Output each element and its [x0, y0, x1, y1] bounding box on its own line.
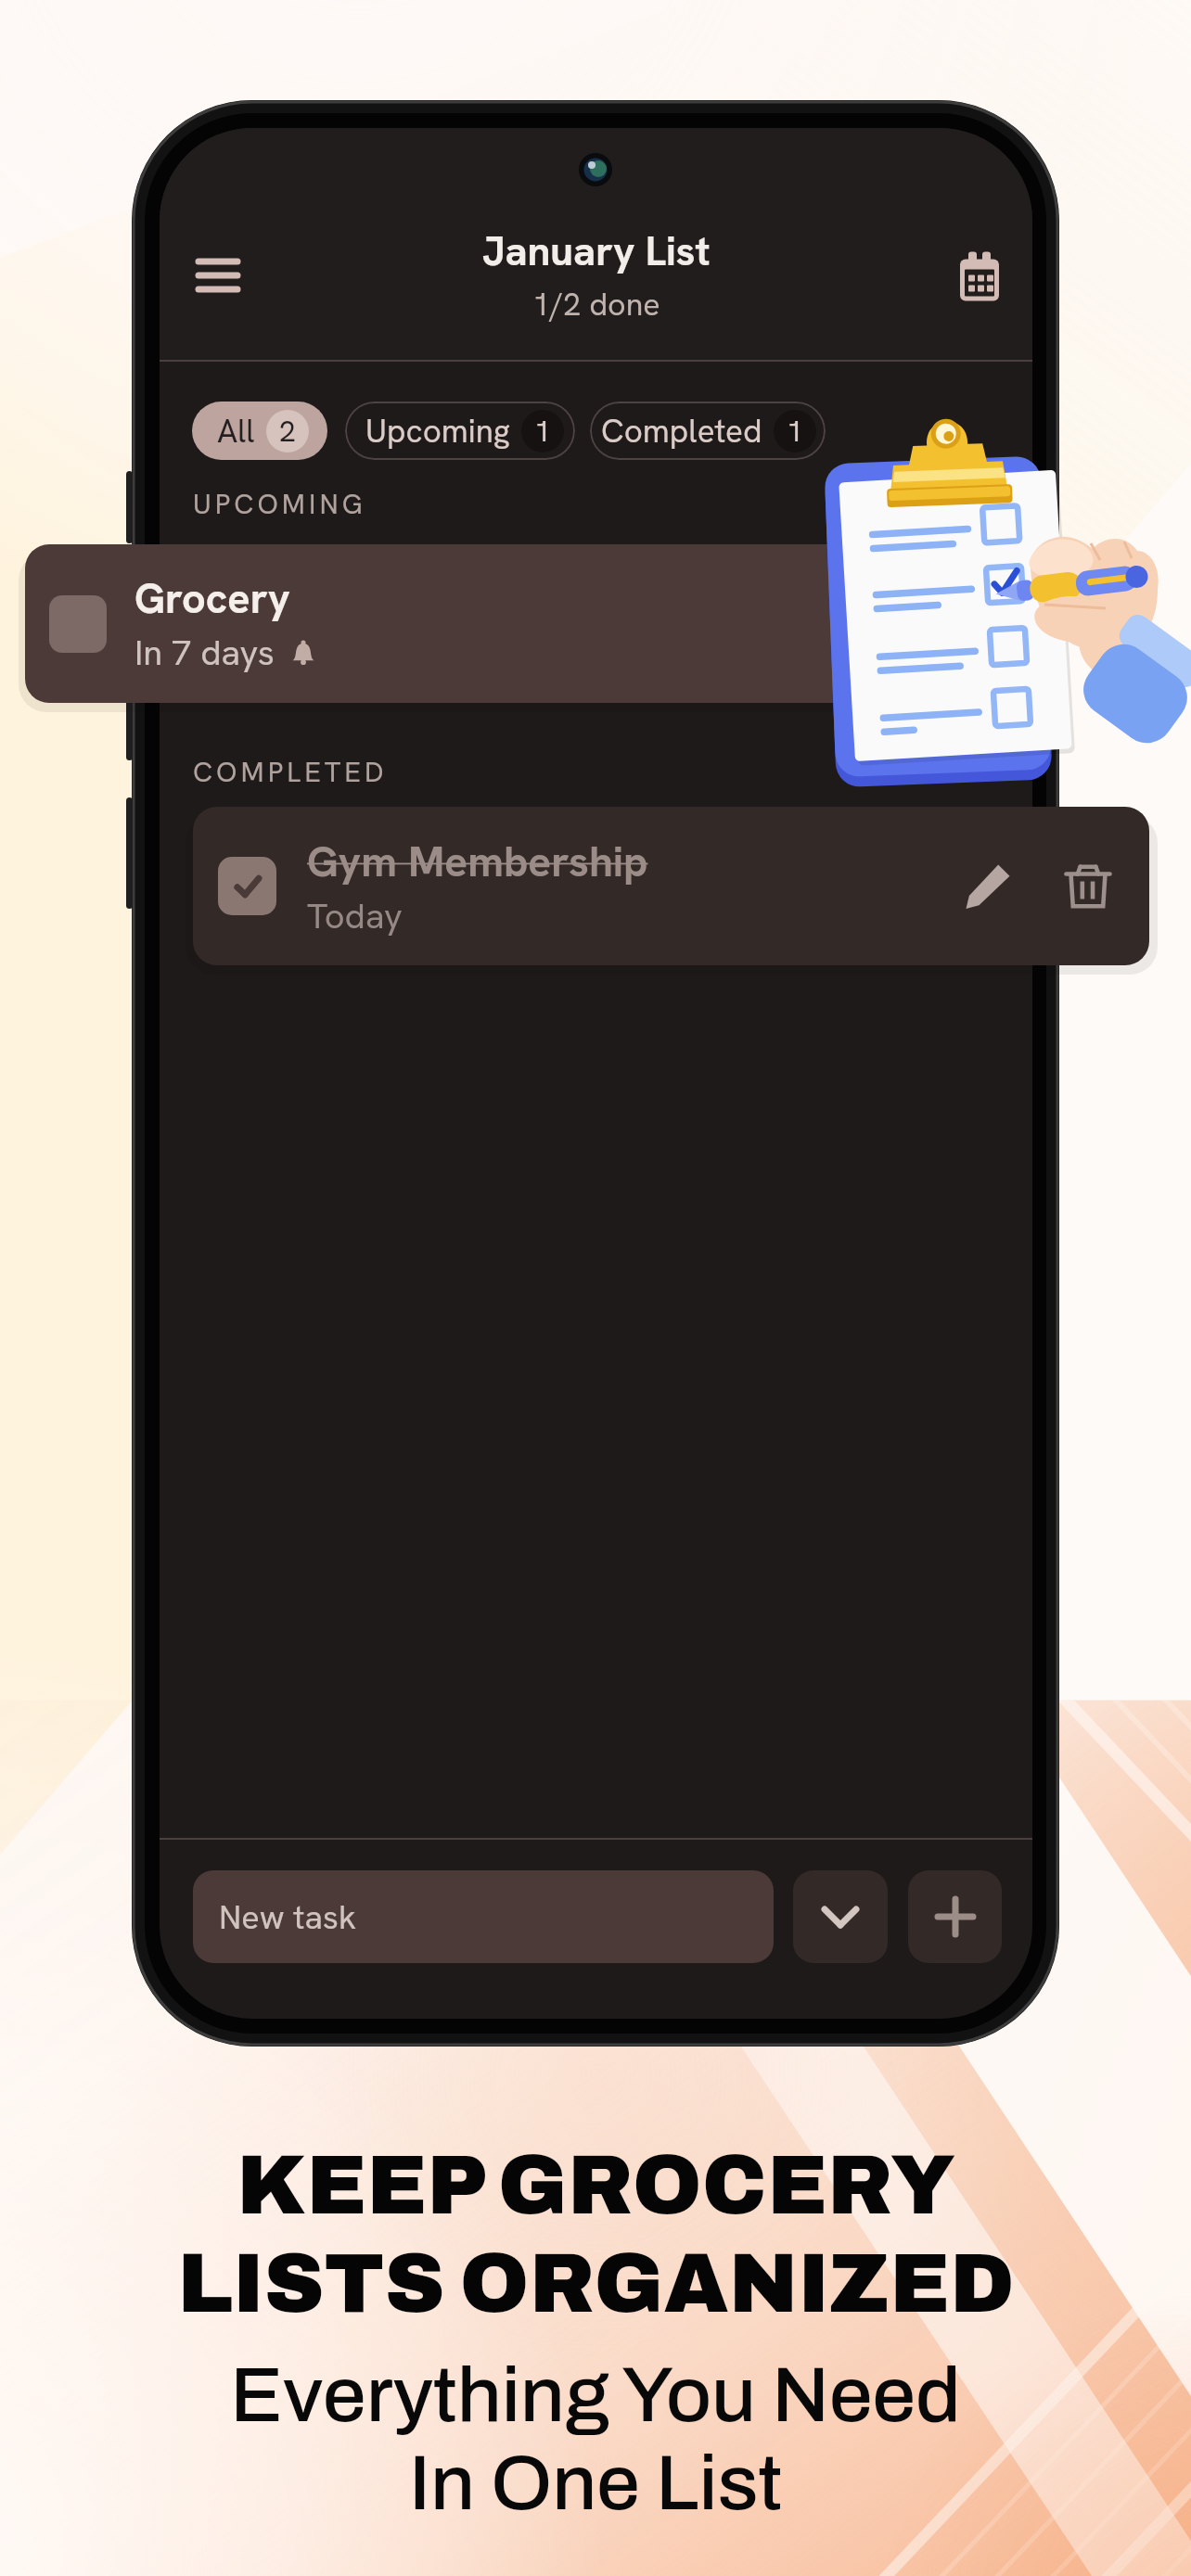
staticText: Gym Membership	[307, 834, 648, 889]
staticText: COMPLETED	[193, 754, 388, 790]
button[interactable]: Grocery	[25, 544, 1008, 703]
staticText: Everything You Need In One List	[230, 2353, 961, 2525]
staticText: All	[217, 410, 255, 453]
button[interactable]: Gym Membership	[193, 807, 1149, 965]
button[interactable]: Menu	[181, 238, 255, 312]
button[interactable]: Completed	[590, 402, 826, 460]
button[interactable]: Upcoming	[345, 402, 575, 460]
staticText: 2	[279, 412, 296, 451]
staticText: UPCOMING	[193, 486, 366, 522]
button[interactable]: Edit	[945, 844, 1031, 929]
staticText: 1	[787, 412, 803, 451]
staticText: Upcoming	[365, 410, 510, 453]
staticText: 1/2 done	[532, 284, 660, 325]
staticText: KEEP GROCERY LISTS ORGANIZED	[177, 2140, 1015, 2328]
button[interactable]: Expand	[793, 1870, 888, 1963]
staticText: January List	[482, 224, 711, 277]
staticText: Today	[307, 893, 403, 939]
button[interactable]: Delete	[1045, 844, 1131, 929]
button[interactable]: Add task	[908, 1870, 1002, 1963]
staticText: Completed	[601, 410, 762, 453]
button[interactable]: New task	[193, 1870, 774, 1963]
staticText: In 7 days	[134, 630, 275, 676]
button[interactable]: Calendar	[942, 240, 1017, 314]
button[interactable]: All	[192, 402, 327, 460]
staticText: 1	[534, 412, 551, 451]
staticText: Grocery	[134, 571, 290, 626]
staticText: New task	[219, 1895, 357, 1939]
